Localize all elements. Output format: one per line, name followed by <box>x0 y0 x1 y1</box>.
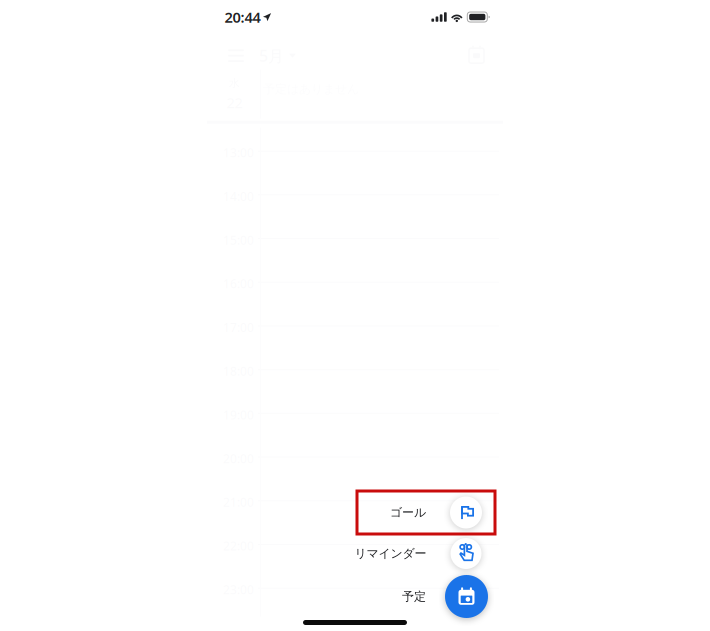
staticText: 予定 <box>402 589 426 604</box>
button[interactable]: リマインダー <box>207 538 503 569</box>
button[interactable]: ゴール <box>207 496 503 529</box>
staticText: 20:44 <box>224 7 260 27</box>
staticText: リマインダー <box>354 546 426 561</box>
staticText: ゴール <box>390 505 426 520</box>
button[interactable]: 予定 <box>207 575 503 618</box>
